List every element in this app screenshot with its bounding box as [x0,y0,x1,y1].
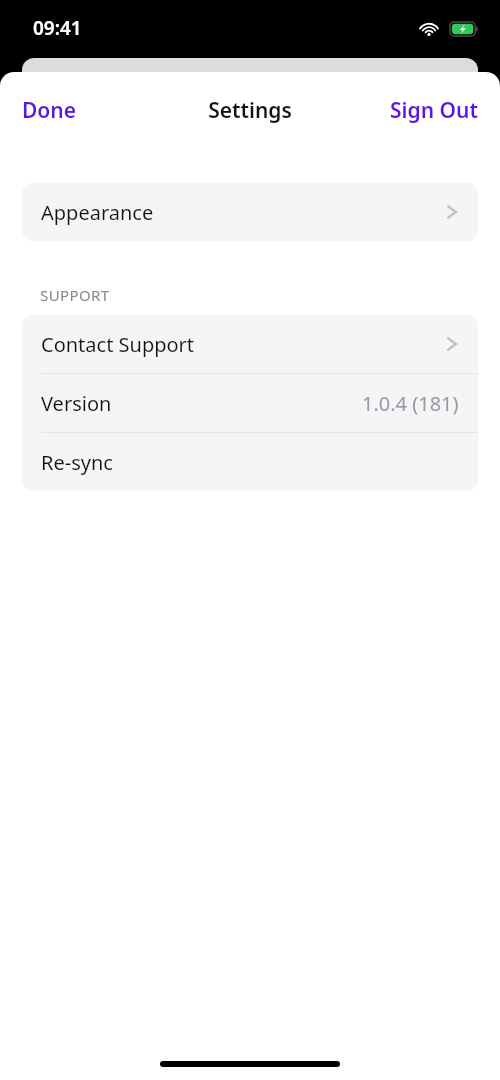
button[interactable]: Contact Support [22,315,478,373]
staticText: 1.0.4 (181) [362,390,459,417]
staticText: Appearance [41,199,154,226]
staticText: Sign Out [390,96,478,125]
staticText: 09:41 [33,15,82,41]
other: Open Contact Support [445,333,459,355]
staticText: Settings [208,96,292,125]
button[interactable]: Version [22,374,478,432]
staticText: Version [41,390,112,417]
button[interactable]: Appearance [22,183,478,241]
staticText: Contact Support [41,331,195,358]
button[interactable]: Done [0,88,99,133]
button[interactable]: Re-sync [22,433,478,491]
button[interactable]: Sign Out [368,88,500,133]
staticText: SUPPORT [40,285,110,305]
staticText: Done [22,96,77,125]
staticText: Re-sync [41,449,113,476]
other: Open Appearance [445,201,459,223]
